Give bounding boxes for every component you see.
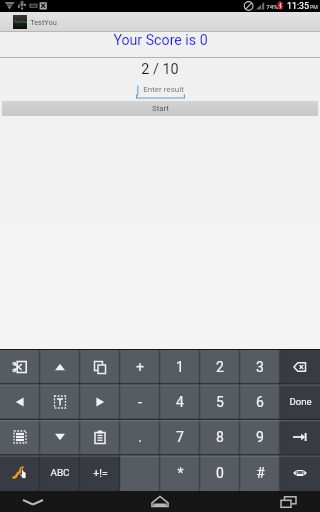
button[interactable]: 6 — [240, 384, 280, 419]
button[interactable]: select — [40, 384, 80, 419]
button[interactable]: Hide keyboard — [0, 491, 66, 512]
button[interactable]: tab — [280, 419, 320, 455]
button[interactable]: 1 — [160, 349, 200, 384]
staticText: 7 — [176, 429, 184, 445]
button[interactable]: Start — [2, 101, 318, 116]
button[interactable]: left — [0, 384, 40, 419]
button[interactable]: Home — [130, 491, 190, 512]
button[interactable]: up — [40, 349, 80, 384]
staticText: Start — [152, 104, 169, 113]
staticText: 5 — [216, 394, 224, 410]
button[interactable]: +!= — [80, 455, 120, 491]
button[interactable]: backspace — [280, 349, 320, 384]
staticText: - — [138, 394, 142, 410]
staticText: Enter result — [139, 85, 188, 94]
button[interactable]: 3 — [240, 349, 280, 384]
button[interactable]: selectall — [0, 419, 40, 455]
staticText: 2 / 10 — [141, 61, 179, 78]
button[interactable]: 2 — [200, 349, 240, 384]
staticText: 74% — [266, 3, 278, 10]
button[interactable]: down — [40, 419, 80, 455]
button[interactable]: ABC — [40, 455, 80, 491]
staticText: TestYou — [30, 18, 57, 27]
button[interactable]: right — [80, 384, 120, 419]
button[interactable]: resize — [280, 455, 320, 491]
staticText: # — [256, 465, 265, 481]
staticText: 4 — [176, 394, 184, 410]
button[interactable]: 4 — [160, 384, 200, 419]
button[interactable]: + — [120, 349, 160, 384]
button[interactable]: copy — [80, 349, 120, 384]
staticText: 0 — [216, 465, 224, 481]
button[interactable]: space — [120, 455, 160, 491]
staticText: 2 — [216, 359, 224, 375]
button[interactable]: Recents — [258, 491, 318, 512]
button[interactable]: paste — [80, 419, 120, 455]
button[interactable]: . — [120, 419, 160, 455]
staticText: 11:35 — [287, 1, 309, 11]
button[interactable]: * — [160, 455, 200, 491]
button[interactable]: 8 — [200, 419, 240, 455]
staticText: 9 — [256, 429, 264, 445]
button[interactable]: 0 — [200, 455, 240, 491]
staticText: Your Score is 0 — [113, 32, 208, 49]
staticText: PM — [310, 4, 318, 10]
staticText: . — [138, 429, 142, 445]
button[interactable]: Done — [280, 384, 320, 419]
staticText: 6 — [256, 394, 264, 410]
button[interactable]: # — [240, 455, 280, 491]
staticText: * — [177, 465, 184, 481]
staticText: 1 — [176, 359, 184, 375]
button[interactable]: - — [120, 384, 160, 419]
staticText: Done — [289, 396, 312, 407]
staticText: +!= — [93, 467, 108, 479]
staticText: ABC — [50, 467, 70, 479]
button[interactable]: 9 — [240, 419, 280, 455]
button[interactable]: cut — [0, 349, 40, 384]
button[interactable]: 7 — [160, 419, 200, 455]
staticText: + — [136, 359, 144, 375]
staticText: 8 — [216, 429, 224, 445]
button[interactable]: 5 — [200, 384, 240, 419]
button[interactable]: gesture — [0, 455, 40, 491]
staticText: 3 — [256, 359, 264, 375]
staticText: TestYou — [14, 20, 27, 24]
